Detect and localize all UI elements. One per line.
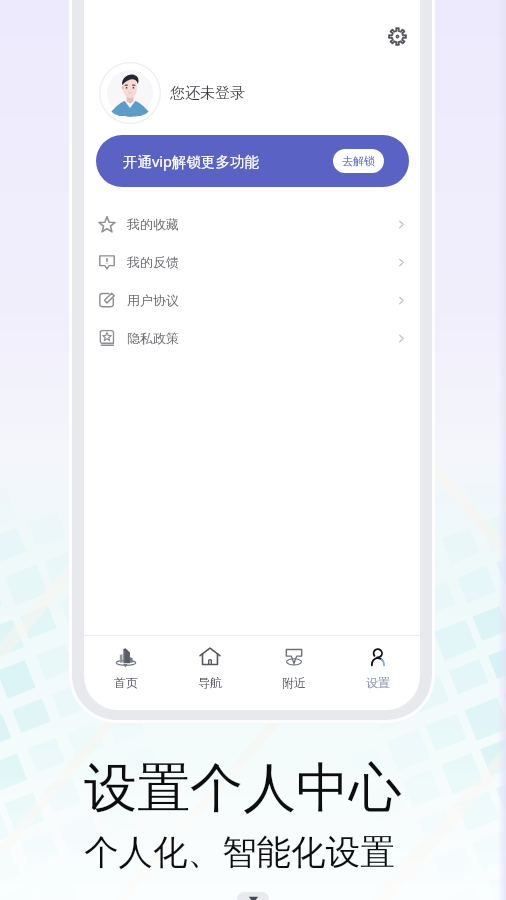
staticText: 首页 bbox=[114, 675, 138, 690]
staticText: 设置个人中心 bbox=[84, 755, 402, 822]
button[interactable]: 您还未登录 bbox=[84, 61, 420, 125]
button[interactable]: 附近 bbox=[252, 636, 336, 710]
button[interactable]: 我的收藏 bbox=[84, 205, 420, 243]
staticText: 导航 bbox=[198, 675, 222, 690]
button[interactable]: 导航 bbox=[168, 636, 252, 710]
button[interactable]: 隐私政策 bbox=[84, 319, 420, 357]
staticText: 您还未登录 bbox=[170, 84, 245, 103]
staticText: 附近 bbox=[282, 675, 306, 690]
button[interactable]: 用户协议 bbox=[84, 281, 420, 319]
button[interactable]: Settings bbox=[379, 18, 415, 54]
staticText: 设置 bbox=[366, 675, 390, 690]
staticText: 去解锁 bbox=[342, 154, 375, 168]
staticText: 隐私政策 bbox=[127, 330, 179, 346]
button[interactable]: 开通vip解锁更多功能 bbox=[96, 135, 409, 187]
staticText: 我的收藏 bbox=[127, 216, 179, 232]
button[interactable]: 首页 bbox=[84, 636, 168, 710]
staticText: 我的反馈 bbox=[127, 254, 179, 270]
button[interactable]: 去解锁 bbox=[333, 149, 384, 173]
staticText: 开通vip解锁更多功能 bbox=[123, 151, 260, 171]
button[interactable]: Scroll down bbox=[237, 892, 269, 900]
staticText: 用户协议 bbox=[127, 292, 179, 308]
staticText: 个人化、智能化设置 bbox=[84, 831, 395, 874]
button[interactable]: 设置 bbox=[336, 636, 420, 710]
button[interactable]: 我的反馈 bbox=[84, 243, 420, 281]
